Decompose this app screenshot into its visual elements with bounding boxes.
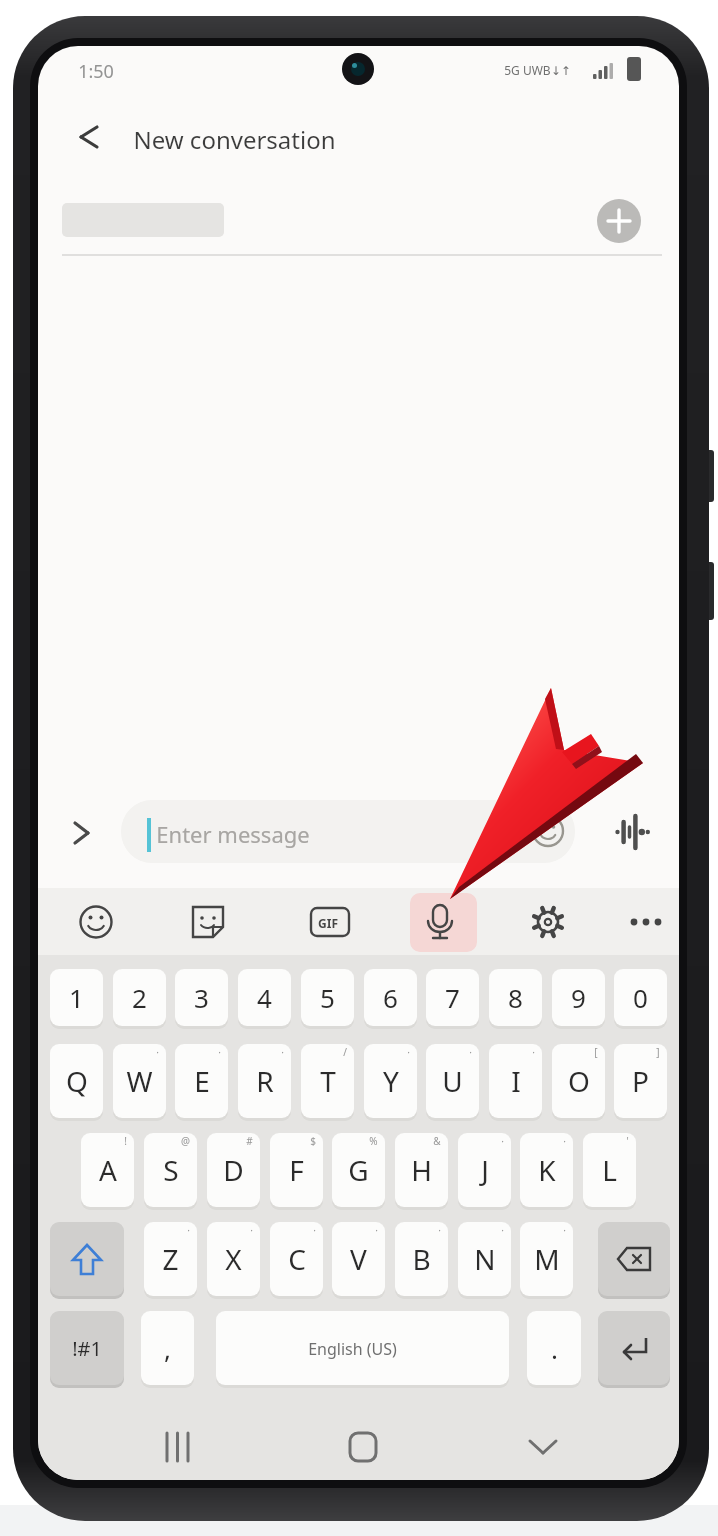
button[interactable]: R: [238, 1044, 291, 1118]
button[interactable]: J: [458, 1133, 511, 1207]
staticText: J: [481, 1151, 489, 1189]
button[interactable]: V: [332, 1222, 385, 1296]
button[interactable]: 1: [50, 969, 103, 1026]
button[interactable]: !#1: [50, 1311, 124, 1385]
button[interactable]: M: [520, 1222, 573, 1296]
staticText: ·: [407, 1045, 410, 1059]
button[interactable]: T: [301, 1044, 354, 1118]
staticText: A: [99, 1151, 117, 1189]
button[interactable]: 4: [238, 969, 291, 1026]
staticText: 2: [132, 980, 147, 1015]
button[interactable]: [508, 1424, 578, 1472]
staticText: [: [594, 1045, 598, 1059]
staticText: 3: [194, 980, 209, 1015]
button[interactable]: O: [552, 1044, 605, 1118]
button[interactable]: [598, 1222, 670, 1296]
button[interactable]: [522, 896, 574, 948]
staticText: E: [194, 1062, 210, 1100]
staticText: ]: [656, 1045, 660, 1059]
button[interactable]: 9: [552, 969, 605, 1026]
button[interactable]: [66, 114, 110, 158]
staticText: T: [320, 1062, 336, 1100]
staticText: 1: [69, 980, 84, 1015]
button[interactable]: 3: [175, 969, 228, 1026]
button[interactable]: I: [489, 1044, 542, 1118]
button[interactable]: [328, 1424, 398, 1472]
button[interactable]: L: [583, 1133, 636, 1207]
staticText: #: [246, 1134, 253, 1148]
button[interactable]: [414, 896, 466, 948]
staticText: @: [181, 1134, 190, 1148]
staticText: 4: [257, 980, 272, 1015]
staticText: English (US): [308, 1338, 397, 1360]
button[interactable]: E: [175, 1044, 228, 1118]
staticText: ·: [313, 1223, 316, 1237]
staticText: R: [256, 1062, 274, 1100]
button[interactable]: A: [81, 1133, 134, 1207]
staticText: GIF: [318, 915, 338, 931]
button[interactable]: H: [395, 1133, 448, 1207]
button[interactable]: [304, 896, 356, 948]
button[interactable]: U: [426, 1044, 479, 1118]
button[interactable]: .: [527, 1311, 581, 1385]
staticText: N: [474, 1240, 496, 1278]
button[interactable]: D: [207, 1133, 260, 1207]
staticText: ·: [156, 1045, 159, 1059]
button[interactable]: 2: [113, 969, 166, 1026]
button[interactable]: [50, 1222, 124, 1296]
button[interactable]: Z: [144, 1222, 197, 1296]
button[interactable]: G: [332, 1133, 385, 1207]
staticText: %: [369, 1134, 378, 1148]
staticText: I: [511, 1062, 521, 1100]
staticText: ·: [281, 1045, 284, 1059]
button[interactable]: F: [270, 1133, 323, 1207]
button[interactable]: 6: [364, 969, 417, 1026]
staticText: New conversation: [133, 123, 336, 156]
staticText: F: [289, 1151, 304, 1189]
staticText: ·: [375, 1223, 378, 1237]
button[interactable]: [597, 199, 641, 243]
button[interactable]: [58, 811, 102, 855]
button[interactable]: K: [520, 1133, 573, 1207]
staticText: Y: [383, 1062, 399, 1100]
staticText: H: [411, 1151, 432, 1189]
staticText: 1:50: [78, 59, 114, 84]
button[interactable]: B: [395, 1222, 448, 1296]
staticText: ·: [563, 1223, 566, 1237]
button[interactable]: [121, 800, 575, 863]
button[interactable]: C: [270, 1222, 323, 1296]
button[interactable]: [70, 896, 122, 948]
button[interactable]: [216, 1311, 509, 1385]
staticText: U: [442, 1062, 463, 1100]
staticText: ·: [250, 1223, 253, 1237]
button[interactable]: [147, 1424, 217, 1472]
button[interactable]: [182, 896, 234, 948]
button[interactable]: 0: [614, 969, 667, 1026]
staticText: S: [163, 1151, 179, 1189]
button[interactable]: [620, 896, 672, 948]
staticText: C: [288, 1240, 306, 1278]
button[interactable]: 5: [301, 969, 354, 1026]
staticText: 5G UWB↓↑: [504, 62, 571, 78]
staticText: /: [343, 1045, 347, 1059]
staticText: ·: [532, 1045, 535, 1059]
staticText: Z: [162, 1240, 179, 1278]
staticText: 0: [633, 980, 648, 1015]
button[interactable]: N: [458, 1222, 511, 1296]
button[interactable]: Y: [364, 1044, 417, 1118]
button[interactable]: Q: [50, 1044, 103, 1118]
button[interactable]: X: [207, 1222, 260, 1296]
button[interactable]: 7: [426, 969, 479, 1026]
button[interactable]: [598, 1311, 670, 1385]
staticText: $: [310, 1134, 316, 1148]
button[interactable]: S: [144, 1133, 197, 1207]
staticText: 6: [383, 980, 398, 1015]
staticText: X: [225, 1240, 242, 1278]
button[interactable]: W: [113, 1044, 166, 1118]
staticText: M: [534, 1240, 560, 1278]
button[interactable]: 8: [489, 969, 542, 1026]
button[interactable]: P: [614, 1044, 667, 1118]
staticText: D: [223, 1151, 244, 1189]
button[interactable]: ,: [141, 1311, 194, 1385]
staticText: ·: [563, 1134, 566, 1148]
